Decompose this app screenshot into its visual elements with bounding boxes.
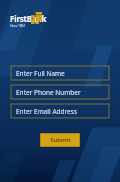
button[interactable]: Enter Phone Number <box>11 85 109 99</box>
staticText: Enter Email Address <box>16 107 77 116</box>
button[interactable]: Enter Full Name <box>11 66 109 80</box>
staticText: Enter Full Name <box>16 69 65 78</box>
staticText: FirstBank <box>10 13 47 24</box>
staticText: Since 1894 <box>10 24 26 28</box>
button[interactable]: Submit <box>40 133 80 147</box>
staticText: Submit <box>50 136 71 144</box>
other: FirstBank elephant emblem <box>31 12 42 24</box>
button[interactable]: Enter Email Address <box>11 104 109 118</box>
staticText: Enter Phone Number <box>16 88 81 97</box>
button[interactable]: FirstBank logo <box>10 13 47 28</box>
